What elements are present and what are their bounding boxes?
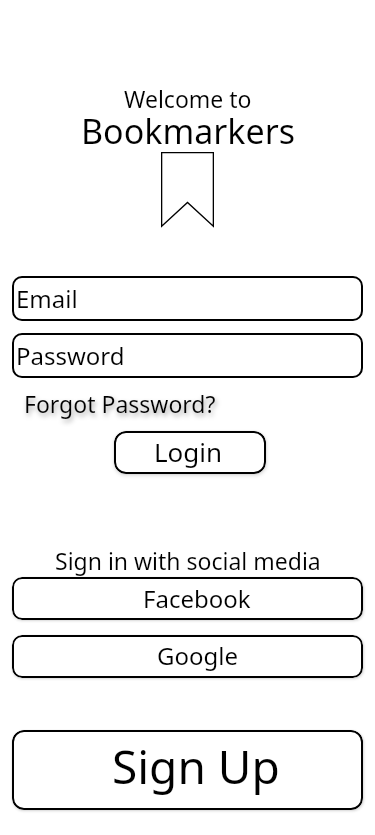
staticText: Google — [157, 639, 238, 672]
button[interactable]: Facebook — [12, 577, 363, 620]
staticText: Login — [154, 434, 223, 469]
staticText: Email — [16, 282, 78, 315]
button[interactable]: Login — [114, 431, 266, 474]
staticText: Sign Up — [112, 735, 280, 798]
button[interactable]: Password — [12, 333, 363, 378]
staticText: Facebook — [143, 582, 251, 615]
staticText: Welcome to — [124, 83, 252, 114]
staticText: Bookmarkers — [81, 108, 295, 154]
button[interactable]: Sign Up — [12, 730, 363, 810]
button[interactable]: Google — [12, 635, 363, 678]
button[interactable]: Email — [12, 276, 363, 321]
staticText: Sign in with social media — [55, 545, 321, 576]
staticText: Password — [16, 339, 125, 372]
button[interactable]: Forgot Password? — [24, 388, 216, 419]
